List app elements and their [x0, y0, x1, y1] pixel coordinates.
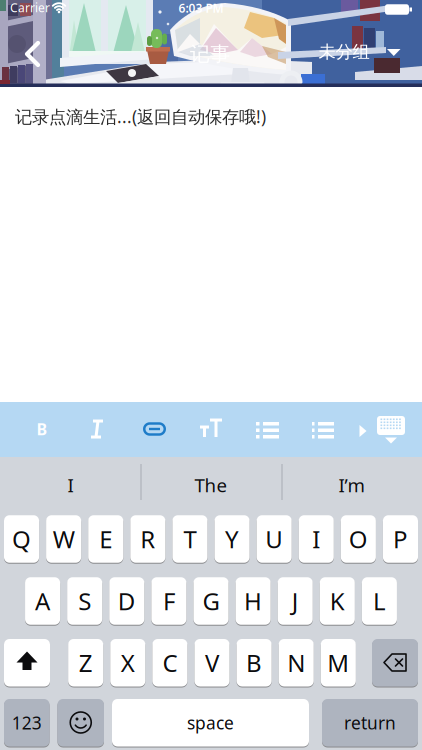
button[interactable]: J: [278, 577, 313, 625]
staticText: I: [312, 523, 320, 555]
staticText: return: [344, 711, 396, 734]
staticText: U: [265, 523, 283, 555]
staticText: K: [330, 585, 345, 617]
staticText: X: [121, 647, 135, 679]
button[interactable]: 项目符号: [247, 409, 287, 449]
button[interactable]: B: [237, 638, 272, 687]
button[interactable]: A: [25, 577, 60, 625]
button[interactable]: U: [257, 515, 292, 563]
staticText: 未分组: [318, 41, 369, 63]
button[interactable]: C: [152, 638, 187, 687]
button[interactable]: 字号: [190, 409, 230, 449]
staticText: O: [349, 523, 368, 555]
staticText: E: [99, 523, 112, 555]
staticText: H: [244, 585, 262, 617]
button[interactable]: I’m: [281, 460, 421, 510]
button[interactable]: Shift: [4, 638, 50, 687]
button[interactable]: V: [194, 638, 230, 687]
staticText: J: [292, 585, 299, 617]
button[interactable]: 斜体: [77, 409, 117, 449]
button[interactable]: N: [279, 638, 314, 687]
staticText: B: [246, 647, 262, 679]
button[interactable]: 未分组: [287, 30, 417, 74]
staticText: The: [194, 473, 227, 497]
staticText: C: [162, 647, 177, 679]
button[interactable]: Q: [4, 515, 39, 563]
button[interactable]: H: [235, 577, 271, 625]
staticText: T: [183, 523, 196, 555]
staticText: A: [35, 585, 50, 617]
button[interactable]: M: [321, 638, 356, 687]
staticText: Q: [12, 523, 31, 555]
staticText: D: [118, 585, 136, 617]
button[interactable]: Z: [68, 638, 103, 687]
staticText: 123: [12, 711, 42, 734]
staticText: 记事: [190, 42, 230, 66]
button[interactable]: 编号列表: [302, 409, 342, 449]
staticText: L: [373, 585, 386, 617]
button[interactable]: F: [151, 577, 186, 625]
button[interactable]: X: [110, 638, 145, 687]
button[interactable]: E: [88, 515, 123, 563]
button[interactable]: space: [112, 698, 309, 747]
staticText: R: [140, 523, 155, 555]
button[interactable]: D: [109, 577, 144, 625]
button[interactable]: 收起键盘: [371, 410, 411, 450]
staticText: V: [205, 647, 219, 679]
button[interactable]: O: [341, 515, 376, 563]
staticText: I’m: [338, 473, 364, 497]
button[interactable]: L: [362, 577, 397, 625]
button[interactable]: return: [322, 698, 418, 747]
staticText: W: [53, 523, 75, 555]
button[interactable]: T: [172, 515, 207, 563]
staticText: S: [78, 585, 91, 617]
button[interactable]: Emoji: [57, 698, 104, 747]
button[interactable]: P: [383, 515, 418, 563]
staticText: Carrier: [10, 0, 50, 15]
staticText: 6:03 PM: [178, 0, 223, 16]
staticText: P: [393, 523, 408, 555]
button[interactable]: 返回: [21, 40, 45, 68]
button[interactable]: The: [141, 460, 281, 510]
button[interactable]: Y: [214, 515, 250, 563]
button[interactable]: 加粗: [22, 409, 62, 449]
staticText: B: [36, 418, 47, 440]
staticText: I: [67, 473, 73, 497]
staticText: F: [163, 585, 175, 617]
button[interactable]: W: [46, 515, 81, 563]
button[interactable]: R: [130, 515, 165, 563]
button[interactable]: G: [193, 577, 228, 625]
button[interactable]: I: [299, 515, 334, 563]
staticText: space: [187, 711, 234, 734]
button[interactable]: S: [67, 577, 102, 625]
staticText: G: [202, 585, 219, 617]
staticText: Z: [79, 647, 93, 679]
staticText: N: [287, 647, 305, 679]
staticText: Y: [225, 523, 239, 555]
button[interactable]: 123: [4, 698, 49, 747]
button[interactable]: 链接: [134, 409, 174, 449]
button[interactable]: Delete: [372, 638, 418, 687]
button[interactable]: I: [0, 460, 140, 510]
staticText: 记录点滴生活...(返回自动保存哦!): [15, 105, 266, 128]
button[interactable]: K: [320, 577, 355, 625]
staticText: M: [327, 647, 349, 679]
